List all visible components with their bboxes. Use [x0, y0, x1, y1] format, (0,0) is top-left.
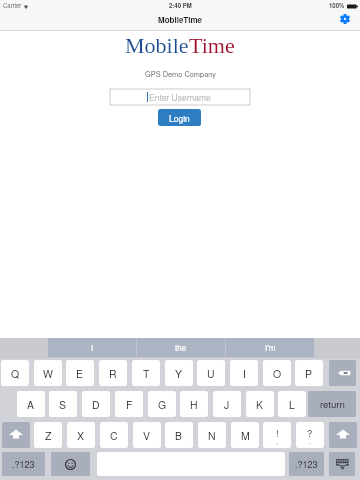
staticText: O [273, 366, 282, 381]
button[interactable]: Emoji [51, 452, 90, 476]
staticText: Mobile [125, 33, 189, 57]
staticText: J [224, 397, 230, 412]
button[interactable]: I [230, 360, 258, 386]
button[interactable]: Enter Username [110, 89, 250, 105]
staticText: ? [307, 426, 313, 440]
button[interactable]: the [137, 338, 225, 357]
staticText: H [190, 397, 198, 412]
staticText: MobileTime [158, 14, 203, 25]
button[interactable]: T [132, 360, 160, 386]
staticText: G [158, 397, 167, 412]
button[interactable]: return [308, 391, 356, 417]
staticText: B [175, 428, 183, 443]
staticText: .?123 [295, 458, 318, 471]
staticText: E [76, 366, 84, 381]
staticText: D [92, 397, 100, 412]
button[interactable]: Login [158, 109, 201, 126]
staticText: Time [189, 33, 235, 57]
button[interactable]: Z [34, 422, 62, 448]
staticText: N [208, 428, 216, 443]
staticText: 100% [329, 1, 345, 10]
staticText: P [305, 366, 313, 381]
button[interactable]: S [49, 391, 77, 417]
staticText: F [126, 397, 133, 412]
button[interactable]: ! [263, 422, 291, 448]
button[interactable]: I [48, 338, 136, 357]
button[interactable]: K [246, 391, 274, 417]
button[interactable]: P [295, 360, 323, 386]
button[interactable]: Q [1, 360, 29, 386]
staticText: Z [45, 428, 52, 443]
button[interactable]: H [180, 391, 208, 417]
button[interactable]: F [115, 391, 143, 417]
button[interactable]: Y [165, 360, 193, 386]
staticText: . [309, 436, 311, 446]
button[interactable]: Shift [2, 422, 30, 448]
staticText: R [109, 366, 117, 381]
button[interactable]: Settings [335, 9, 355, 29]
staticText: X [77, 428, 85, 443]
button[interactable]: Hide keyboard [329, 452, 355, 476]
staticText: Login [169, 112, 190, 124]
staticText: L [289, 397, 295, 412]
button[interactable]: I'm [226, 338, 314, 357]
button[interactable]: A [17, 391, 45, 417]
button[interactable]: N [198, 422, 226, 448]
staticText: ! [276, 426, 279, 440]
staticText: 2:40 PM [169, 1, 192, 10]
staticText: Q [11, 366, 20, 381]
staticText: I'm [265, 342, 276, 353]
staticText: W [43, 366, 53, 381]
button[interactable]: J [213, 391, 241, 417]
button[interactable]: Backspace [329, 360, 356, 386]
button[interactable]: R [99, 360, 127, 386]
staticText: I [243, 366, 246, 381]
staticText: Carrier [3, 1, 22, 10]
staticText: .?123 [12, 458, 35, 471]
button[interactable]: U [197, 360, 225, 386]
button[interactable]: .?123 [2, 452, 45, 476]
button[interactable]: X [67, 422, 95, 448]
staticText: U [207, 366, 215, 381]
staticText: V [143, 428, 151, 443]
staticText: return [320, 397, 345, 411]
staticText: A [27, 397, 35, 412]
staticText: Enter Username [149, 91, 211, 103]
staticText: , [276, 436, 278, 446]
button[interactable]: ? [296, 422, 324, 448]
button[interactable]: .?123 [289, 452, 324, 476]
staticText: GPS Demo Company [145, 69, 216, 80]
button[interactable]: G [148, 391, 176, 417]
staticText: C [110, 428, 118, 443]
button[interactable]: Shift [329, 422, 357, 448]
staticText: T [143, 366, 150, 381]
staticText: Y [175, 366, 183, 381]
button[interactable]: D [82, 391, 110, 417]
staticText: I [91, 342, 94, 353]
button[interactable]: C [100, 422, 128, 448]
button[interactable]: O [263, 360, 291, 386]
button[interactable]: L [278, 391, 306, 417]
staticText: S [59, 397, 67, 412]
button[interactable]: M [231, 422, 259, 448]
button[interactable]: V [133, 422, 161, 448]
staticText: K [256, 397, 264, 412]
button[interactable]: E [66, 360, 94, 386]
button[interactable]: W [34, 360, 62, 386]
staticText: the [175, 342, 187, 353]
staticText: M [241, 428, 250, 443]
button[interactable]: B [165, 422, 193, 448]
